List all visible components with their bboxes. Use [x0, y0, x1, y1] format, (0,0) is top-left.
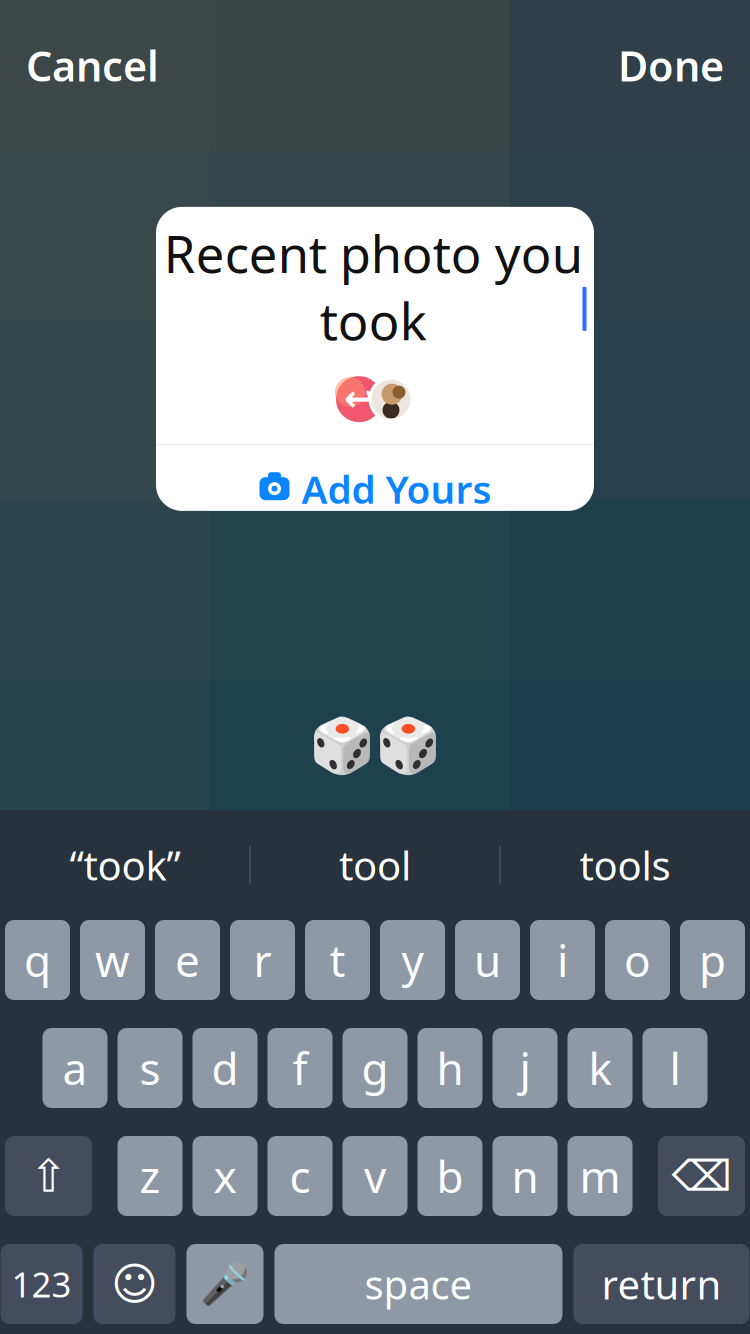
staticText: e	[175, 931, 200, 989]
staticText: n	[511, 1147, 538, 1205]
staticText: t	[329, 931, 345, 989]
button[interactable]: q	[5, 920, 70, 1000]
button[interactable]: o	[605, 920, 670, 1000]
button[interactable]: tool	[250, 838, 499, 892]
button[interactable]: v	[342, 1136, 407, 1216]
staticText: u	[474, 931, 501, 989]
staticText: space	[364, 1257, 472, 1310]
button[interactable]: z	[117, 1136, 182, 1216]
button[interactable]: x	[192, 1136, 257, 1216]
staticText: p	[699, 931, 726, 989]
button[interactable]: Delete	[658, 1136, 745, 1216]
staticText: m	[579, 1147, 620, 1205]
button[interactable]: Cancel	[0, 24, 185, 107]
button[interactable]: tools	[500, 838, 749, 892]
button[interactable]: return	[573, 1244, 749, 1324]
staticText: r	[253, 931, 271, 989]
staticText: l	[669, 1039, 680, 1097]
staticText: w	[95, 931, 130, 989]
staticText: o	[624, 931, 651, 989]
staticText: return	[601, 1257, 721, 1310]
button[interactable]: “took”	[0, 838, 249, 892]
staticText: g	[361, 1039, 388, 1097]
staticText: 🎤	[200, 1261, 250, 1307]
staticText: Add Yours	[301, 463, 491, 514]
button[interactable]: s	[117, 1028, 182, 1108]
staticText: j	[519, 1039, 530, 1097]
staticText: d	[211, 1039, 238, 1097]
staticText: 123	[11, 1261, 71, 1307]
button[interactable]: e	[155, 920, 220, 1000]
button[interactable]: a	[42, 1028, 107, 1108]
button[interactable]: Emoji	[93, 1244, 175, 1324]
button[interactable]: j	[492, 1028, 557, 1108]
button[interactable]: i	[530, 920, 595, 1000]
button[interactable]: Add Yours	[156, 445, 594, 532]
button[interactable]: Shift	[5, 1136, 92, 1216]
staticText: f	[292, 1039, 307, 1097]
button[interactable]: y	[380, 920, 445, 1000]
button[interactable]: f	[267, 1028, 332, 1108]
staticText: ↩	[344, 378, 374, 419]
button[interactable]: c	[267, 1136, 332, 1216]
staticText: Cancel	[26, 38, 159, 93]
staticText: ⌫	[671, 1152, 731, 1200]
button[interactable]: r	[230, 920, 295, 1000]
staticText: h	[436, 1039, 463, 1097]
button[interactable]: w	[80, 920, 145, 1000]
staticText: tools	[579, 838, 670, 891]
button[interactable]: l	[642, 1028, 707, 1108]
staticText: ☺	[111, 1258, 158, 1310]
staticText: Recent photo you took	[163, 220, 582, 354]
button[interactable]: u	[455, 920, 520, 1000]
staticText: ⇧	[29, 1150, 67, 1202]
staticText: 🎲🎲	[309, 715, 441, 776]
staticText: s	[139, 1039, 160, 1097]
staticText: Done	[618, 38, 724, 93]
staticText: tool	[339, 838, 411, 891]
button[interactable]: g	[342, 1028, 407, 1108]
button[interactable]: h	[417, 1028, 482, 1108]
staticText: a	[62, 1039, 87, 1097]
button[interactable]: n	[492, 1136, 557, 1216]
staticText: v	[364, 1147, 386, 1205]
staticText: c	[289, 1147, 310, 1205]
button[interactable]: t	[305, 920, 370, 1000]
staticText: “took”	[69, 838, 180, 891]
button[interactable]: space	[274, 1244, 562, 1324]
button[interactable]: p	[680, 920, 745, 1000]
button[interactable]: m	[567, 1136, 632, 1216]
button[interactable]: b	[417, 1136, 482, 1216]
staticText: z	[139, 1147, 160, 1205]
staticText: y	[401, 931, 423, 989]
staticText: q	[24, 931, 51, 989]
button[interactable]: Done	[592, 24, 750, 107]
staticText: b	[436, 1147, 463, 1205]
button[interactable]: d	[192, 1028, 257, 1108]
staticText: k	[588, 1039, 611, 1097]
button[interactable]: 123	[0, 1244, 82, 1324]
button[interactable]: k	[567, 1028, 632, 1108]
button[interactable]: Dictation	[186, 1244, 263, 1324]
staticText: x	[213, 1147, 236, 1205]
staticText: i	[557, 931, 568, 989]
